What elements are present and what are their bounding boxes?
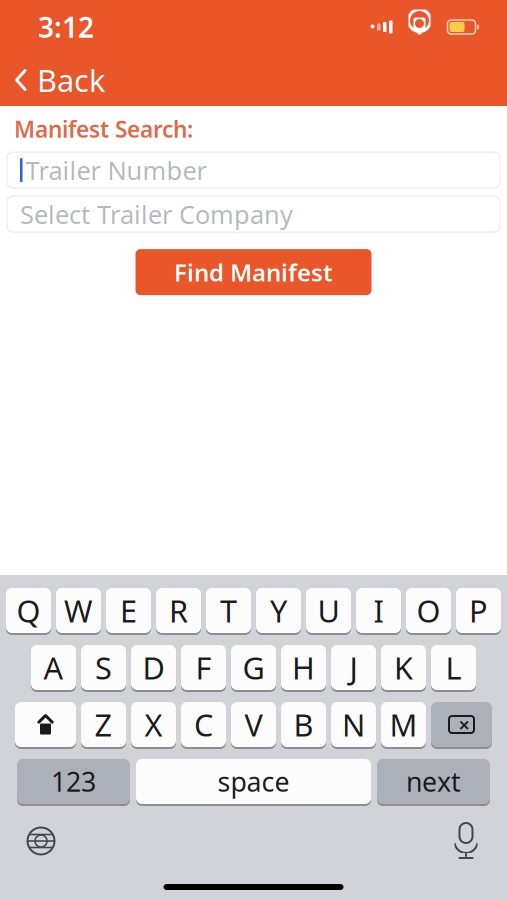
staticText: T (220, 590, 237, 631)
button[interactable]: Find Manifest (135, 249, 371, 295)
staticText: U (317, 590, 339, 631)
staticText: 3:12 (38, 8, 94, 46)
staticText: Manifest Search: (14, 114, 193, 144)
staticText: V (244, 704, 262, 745)
button[interactable]: space (136, 759, 371, 806)
button[interactable]: Q (6, 588, 51, 635)
button[interactable]: C (181, 702, 226, 749)
staticText: J (349, 647, 357, 688)
button[interactable]: B (281, 702, 326, 749)
staticText: A (43, 647, 63, 688)
button[interactable]: P (456, 588, 501, 635)
staticText: Y (270, 590, 287, 631)
button[interactable]: next (377, 759, 490, 806)
staticText: × (458, 711, 469, 738)
staticText: C (194, 704, 213, 745)
button[interactable]: Delete (431, 702, 492, 749)
staticText: G (242, 647, 264, 688)
staticText: H (292, 647, 315, 688)
staticText: Z (94, 704, 112, 745)
button[interactable]: H (281, 645, 326, 692)
button[interactable]: M (381, 702, 426, 749)
staticText: Back (37, 60, 105, 100)
staticText: K (394, 647, 413, 688)
button[interactable]: J (331, 645, 376, 692)
staticText: D (142, 647, 164, 688)
staticText: W (64, 590, 93, 631)
button[interactable]: Back (0, 52, 117, 108)
staticText: I (373, 590, 383, 631)
staticText: Trailer Number (25, 153, 206, 187)
staticText: next (406, 764, 461, 799)
button[interactable]: Select Trailer Company (7, 196, 500, 232)
button[interactable]: Shift (15, 702, 76, 749)
button[interactable]: X (131, 702, 176, 749)
button[interactable]: G (231, 645, 276, 692)
staticText: X (144, 704, 162, 745)
button[interactable]: K (381, 645, 426, 692)
button[interactable]: O (406, 588, 451, 635)
staticText: N (342, 704, 365, 745)
staticText: 123 (51, 764, 96, 799)
staticText: R (169, 590, 188, 631)
staticText: O (416, 590, 440, 631)
staticText: Select Trailer Company (20, 197, 293, 231)
button[interactable]: R (156, 588, 201, 635)
staticText: Find Manifest (174, 256, 333, 288)
button[interactable]: A (31, 645, 76, 692)
button[interactable]: Next keyboard (18, 818, 64, 864)
staticText: B (293, 704, 313, 745)
staticText: S (95, 647, 112, 688)
button[interactable]: 123 (17, 759, 130, 806)
button[interactable]: Trailer Number (7, 152, 500, 188)
staticText: P (469, 590, 488, 631)
staticText: L (445, 647, 461, 688)
button[interactable]: S (81, 645, 126, 692)
button[interactable]: W (56, 588, 101, 635)
button[interactable]: Z (81, 702, 126, 749)
button[interactable]: E (106, 588, 151, 635)
button[interactable]: V (231, 702, 276, 749)
staticText: F (195, 647, 211, 688)
button[interactable]: Dictate (443, 818, 489, 864)
button[interactable]: U (306, 588, 351, 635)
staticText: space (217, 764, 289, 799)
button[interactable]: F (181, 645, 226, 692)
staticText: Q (16, 590, 40, 631)
button[interactable]: I (356, 588, 401, 635)
button[interactable]: L (431, 645, 476, 692)
button[interactable]: D (131, 645, 176, 692)
button[interactable]: T (206, 588, 251, 635)
button[interactable]: N (331, 702, 376, 749)
staticText: E (120, 590, 137, 631)
button[interactable]: Y (256, 588, 301, 635)
staticText: M (389, 704, 417, 745)
